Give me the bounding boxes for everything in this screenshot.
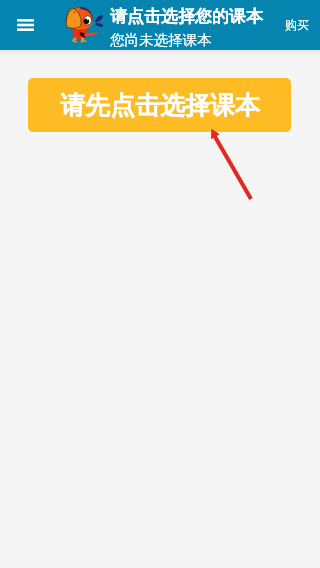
staticText: 请先点击选择课本	[60, 90, 260, 121]
button[interactable]: Menu	[5, 5, 45, 45]
staticText: 您尚未选择课本	[110, 31, 212, 49]
button[interactable]: Logo	[55, 0, 273, 50]
staticText: 请点击选择您的课本	[110, 6, 263, 27]
other: Logo	[62, 4, 106, 46]
button[interactable]: 请先点击选择课本	[28, 78, 291, 132]
button[interactable]: 购买	[274, 0, 319, 49]
staticText: 购买	[285, 17, 309, 32]
